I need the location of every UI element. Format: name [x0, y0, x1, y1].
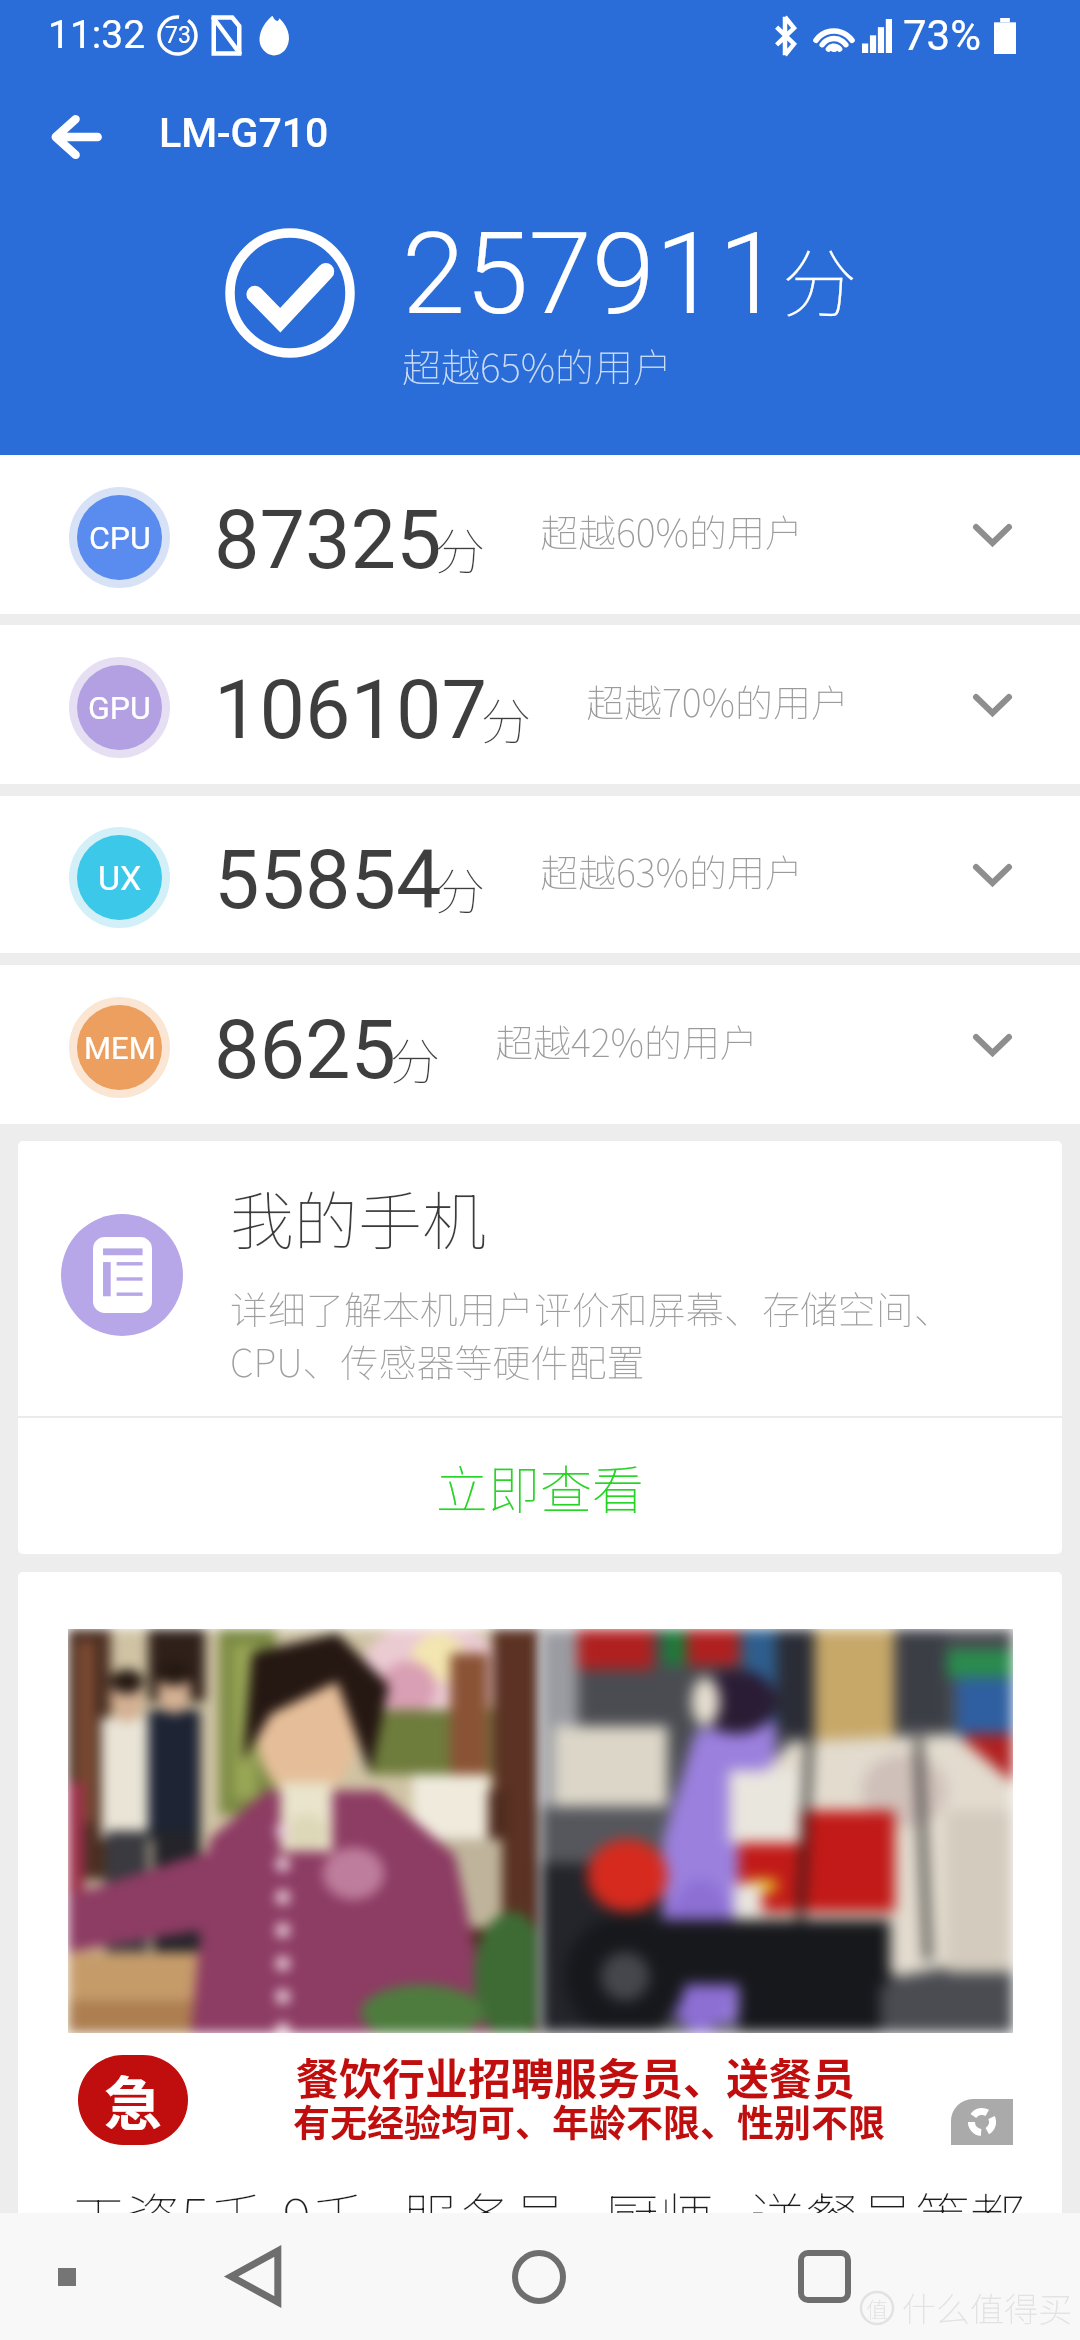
staticText: 11:32: [48, 12, 146, 58]
staticText: 餐饮行业招聘服务员、送餐员: [296, 2045, 855, 2107]
button[interactable]: Expand: [904, 455, 1080, 614]
button[interactable]: MEM: [0, 965, 1080, 1124]
button[interactable]: 立即查看: [18, 1418, 1062, 1554]
button[interactable]: Home: [469, 2213, 609, 2340]
staticText: 87325: [214, 493, 442, 588]
staticText: 急: [104, 2058, 163, 2142]
staticText: CPU: [89, 519, 151, 557]
button[interactable]: Back: [184, 2213, 324, 2340]
staticText: 分: [435, 852, 485, 924]
button[interactable]: Back: [32, 93, 120, 181]
staticText: 分: [782, 224, 858, 333]
button[interactable]: UX: [0, 796, 1080, 953]
staticText: 超越65%的用户: [402, 337, 672, 393]
staticText: 分: [481, 682, 531, 754]
staticText: 257911: [402, 207, 782, 341]
staticText: 什么值得买: [902, 2283, 1072, 2332]
staticText: 工资5千-9千 服务员 厨师 送餐员等都: [71, 2175, 1026, 2255]
staticText: 超越63%的用户: [540, 843, 804, 898]
button[interactable]: 急: [18, 1572, 1062, 2335]
button[interactable]: Expand: [904, 965, 1080, 1124]
staticText: 106107: [214, 663, 488, 758]
button[interactable]: 我的手机: [18, 1141, 1062, 1416]
staticText: 分: [435, 512, 485, 584]
staticText: 73%: [903, 11, 981, 60]
staticText: 55854: [214, 833, 442, 928]
staticText: 立即查看: [436, 1449, 645, 1524]
staticText: GPU: [88, 689, 151, 727]
staticText: 超越60%的用户: [540, 503, 804, 558]
staticText: 详细了解本机用户评价和屏幕、存储空间、 CPU、传感器等硬件配置: [230, 1280, 953, 1388]
staticText: 我的手机: [230, 1171, 486, 1264]
staticText: 超越70%的用户: [586, 673, 850, 728]
staticText: 8625: [214, 1003, 397, 1098]
button[interactable]: Refresh ad: [951, 2099, 1013, 2145]
staticText: 有无经验均可、年龄不限、性别不限: [293, 2094, 885, 2145]
staticText: 值: [866, 2292, 889, 2324]
staticText: 73: [165, 22, 191, 49]
staticText: MEM: [84, 1030, 156, 1066]
staticText: 分: [390, 1022, 440, 1094]
button[interactable]: Expand: [904, 796, 1080, 953]
button[interactable]: Recents: [754, 2213, 894, 2340]
staticText: UX: [98, 858, 142, 898]
button[interactable]: CPU: [0, 455, 1080, 614]
button[interactable]: GPU: [0, 625, 1080, 784]
staticText: LM-G710: [159, 109, 329, 157]
staticText: 超越42%的用户: [495, 1013, 759, 1068]
button[interactable]: Expand: [904, 625, 1080, 784]
